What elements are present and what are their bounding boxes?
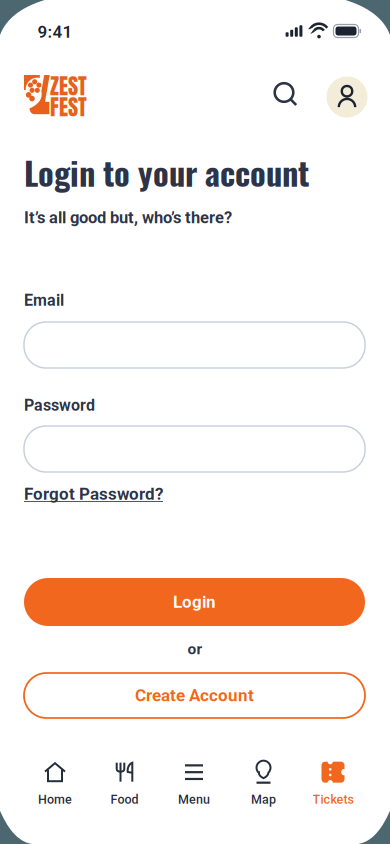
button[interactable] bbox=[272, 82, 300, 110]
staticText: Login bbox=[173, 592, 216, 612]
button[interactable]: Home bbox=[19, 757, 91, 809]
staticText: Tickets bbox=[312, 792, 353, 807]
staticText: It’s all good but, who’s there? bbox=[24, 208, 232, 227]
staticText: Email bbox=[24, 291, 64, 310]
staticText: Create Account bbox=[135, 685, 254, 705]
staticText: Login to your account bbox=[24, 148, 309, 196]
button[interactable] bbox=[24, 322, 365, 368]
button[interactable]: Menu bbox=[158, 757, 230, 809]
button[interactable] bbox=[326, 76, 367, 117]
staticText: Menu bbox=[178, 792, 210, 807]
staticText: Home bbox=[38, 792, 72, 807]
button[interactable]: Forgot Password? bbox=[24, 484, 163, 504]
button[interactable]: Map bbox=[227, 757, 299, 809]
button[interactable]: ZEST bbox=[24, 75, 88, 115]
staticText: 9:41 bbox=[37, 22, 72, 42]
button[interactable]: Create Account bbox=[24, 673, 365, 718]
staticText: Password bbox=[24, 396, 95, 415]
staticText: or bbox=[187, 640, 202, 658]
staticText: ZEST bbox=[50, 69, 87, 102]
button[interactable] bbox=[24, 426, 365, 472]
staticText: Food bbox=[110, 792, 138, 807]
button[interactable]: Login bbox=[24, 578, 365, 626]
button[interactable]: Tickets bbox=[297, 757, 369, 809]
button[interactable]: Food bbox=[88, 757, 160, 809]
staticText: Forgot Password? bbox=[24, 484, 163, 504]
staticText: Map bbox=[251, 792, 276, 807]
staticText: FEST bbox=[50, 90, 87, 123]
